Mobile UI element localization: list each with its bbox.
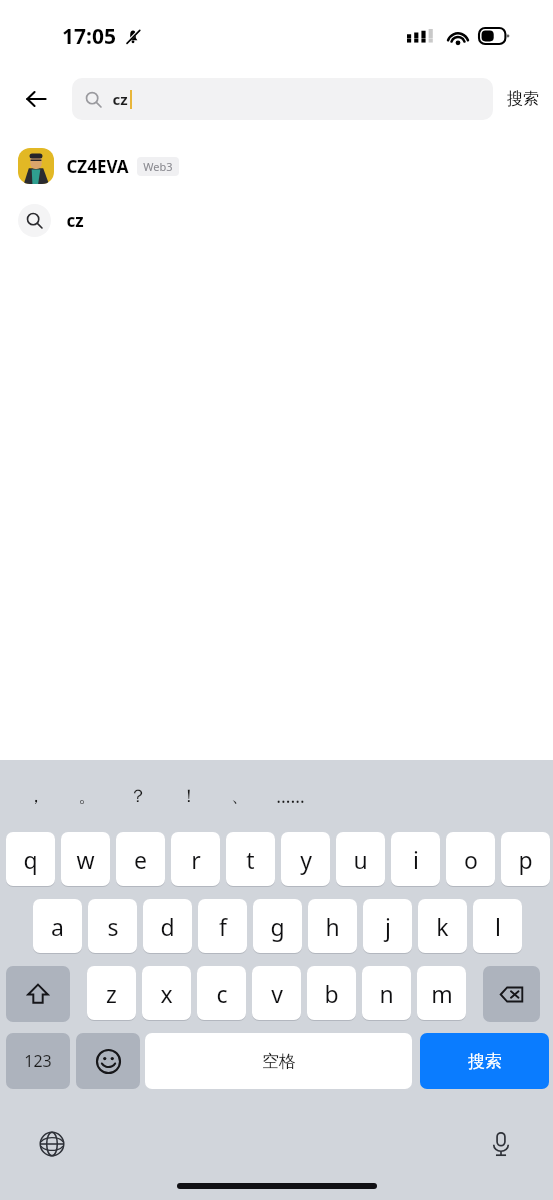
staticText: cz	[112, 89, 128, 109]
staticText: e	[134, 844, 147, 875]
button[interactable]: 搜索	[420, 1033, 549, 1089]
staticText: r	[191, 844, 201, 875]
staticText: x	[160, 978, 173, 1009]
button[interactable]: d	[143, 899, 192, 953]
button[interactable]: ，	[10, 771, 61, 821]
staticText: 123	[24, 1050, 52, 1072]
button[interactable]: Shift	[6, 966, 70, 1022]
staticText: g	[270, 911, 285, 942]
staticText: o	[464, 844, 478, 875]
button[interactable]: 搜索	[507, 72, 539, 126]
staticText: 搜索	[468, 1051, 502, 1072]
staticText: d	[160, 911, 175, 942]
staticText: s	[107, 911, 119, 942]
button[interactable]: g	[253, 899, 302, 953]
staticText: j	[385, 911, 391, 942]
staticText: 搜索	[507, 89, 539, 109]
button[interactable]: k	[418, 899, 467, 953]
staticText: w	[76, 844, 95, 875]
staticText: i	[413, 844, 419, 875]
staticText: p	[518, 844, 533, 875]
staticText: b	[324, 978, 339, 1009]
button[interactable]: 、	[214, 771, 265, 821]
button[interactable]: p	[501, 832, 550, 886]
staticText: 17:05	[62, 22, 116, 51]
button[interactable]: ？	[112, 771, 163, 821]
staticText: ，	[27, 785, 45, 808]
staticText: 、	[231, 785, 249, 808]
staticText: 空格	[262, 1051, 296, 1072]
button[interactable]: t	[226, 832, 275, 886]
button[interactable]: o	[446, 832, 495, 886]
staticText: CZ4EVA	[66, 155, 129, 178]
button[interactable]: Backspace	[483, 966, 540, 1022]
button[interactable]: CZ4EVA	[0, 140, 553, 192]
staticText: c	[216, 978, 228, 1009]
button[interactable]: v	[252, 966, 301, 1020]
button[interactable]: h	[308, 899, 357, 953]
button[interactable]: m	[417, 966, 466, 1020]
button[interactable]: x	[142, 966, 191, 1020]
staticText: u	[353, 844, 368, 875]
staticText: cz	[66, 209, 84, 232]
button[interactable]: Back	[0, 72, 72, 126]
button[interactable]: f	[198, 899, 247, 953]
button[interactable]: u	[336, 832, 385, 886]
button[interactable]: q	[6, 832, 55, 886]
button[interactable]: cz	[0, 192, 553, 248]
button[interactable]: e	[116, 832, 165, 886]
button[interactable]: r	[171, 832, 220, 886]
button[interactable]: cz	[72, 78, 493, 120]
staticText: q	[23, 844, 38, 875]
button[interactable]: a	[33, 899, 82, 953]
staticText: k	[436, 911, 449, 942]
button[interactable]: n	[362, 966, 411, 1020]
staticText: ！	[180, 785, 198, 808]
button[interactable]: Change keyboard	[32, 1124, 72, 1164]
button[interactable]: 。	[61, 771, 112, 821]
button[interactable]: c	[197, 966, 246, 1020]
staticText: ……	[276, 784, 305, 809]
staticText: a	[51, 911, 64, 942]
staticText: t	[246, 844, 255, 875]
staticText: ？	[129, 785, 147, 808]
button[interactable]: y	[281, 832, 330, 886]
button[interactable]: ……	[265, 771, 316, 821]
button[interactable]: Emoji	[76, 1033, 140, 1089]
button[interactable]: 123	[6, 1033, 70, 1089]
button[interactable]: ！	[163, 771, 214, 821]
button[interactable]: b	[307, 966, 356, 1020]
button[interactable]: l	[473, 899, 522, 953]
staticText: Web3	[143, 159, 173, 174]
button[interactable]: z	[87, 966, 136, 1020]
button[interactable]: i	[391, 832, 440, 886]
staticText: z	[106, 978, 117, 1009]
staticText: h	[325, 911, 340, 942]
staticText: l	[495, 911, 501, 942]
button[interactable]: j	[363, 899, 412, 953]
staticText: 。	[78, 785, 96, 808]
button[interactable]: w	[61, 832, 110, 886]
staticText: m	[431, 978, 453, 1009]
staticText: y	[300, 844, 312, 875]
staticText: n	[379, 978, 394, 1009]
button[interactable]: Voice input	[481, 1124, 521, 1164]
staticText: f	[219, 911, 227, 942]
button[interactable]: 空格	[145, 1033, 412, 1089]
button[interactable]: s	[88, 899, 137, 953]
staticText: v	[271, 978, 283, 1009]
